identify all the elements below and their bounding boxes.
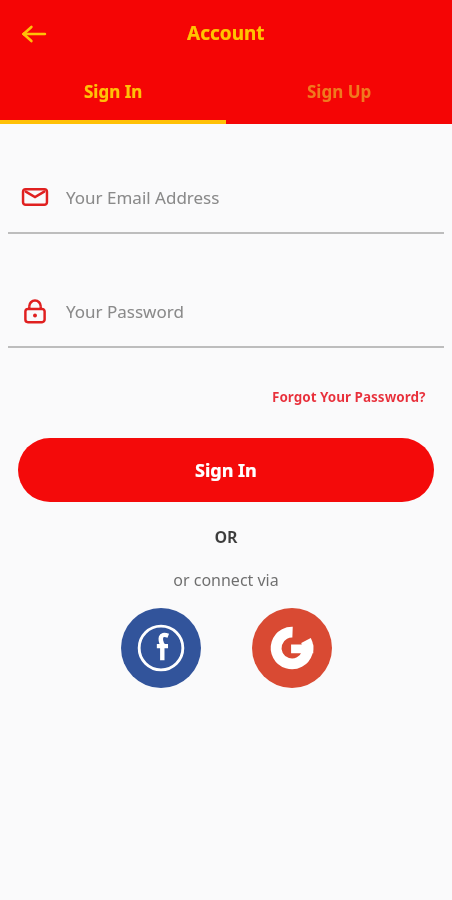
button[interactable]: Back — [12, 12, 56, 56]
button[interactable]: Your Password — [0, 294, 452, 348]
button[interactable]: Sign In — [0, 66, 226, 124]
staticText: OR — [0, 526, 452, 548]
staticText: Sign In — [84, 80, 143, 103]
staticText: or connect via — [0, 569, 452, 591]
button[interactable]: Sign In — [18, 438, 434, 502]
staticText: Your Email Address — [66, 186, 220, 209]
button[interactable]: Forgot Your Password? — [268, 384, 430, 410]
staticText: Your Password — [66, 300, 184, 323]
button[interactable]: Sign in with Google — [252, 608, 332, 688]
button[interactable]: Sign Up — [226, 66, 452, 124]
button[interactable]: Sign in with Facebook — [121, 608, 201, 688]
staticText: Sign In — [195, 458, 257, 483]
staticText: Forgot Your Password? — [272, 388, 426, 406]
staticText: Account — [187, 20, 265, 46]
staticText: Sign Up — [307, 80, 372, 103]
button[interactable]: Your Email Address — [0, 180, 452, 234]
